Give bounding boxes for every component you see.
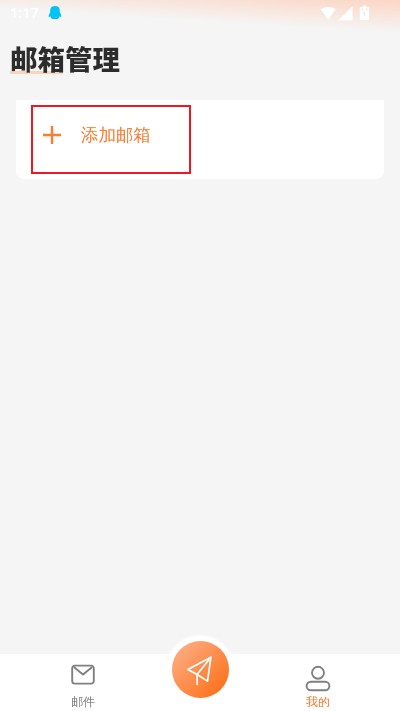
button[interactable]: 邮件 bbox=[47, 654, 119, 711]
staticText: 邮件 bbox=[71, 694, 95, 709]
button[interactable]: 添加邮箱 bbox=[31, 105, 191, 174]
staticText: 添加邮箱 bbox=[81, 124, 151, 146]
button[interactable]: 写邮件 bbox=[172, 641, 229, 698]
staticText: 我的 bbox=[306, 694, 330, 709]
staticText: 邮箱管理 bbox=[10, 38, 120, 78]
button[interactable]: 我的 bbox=[282, 654, 354, 711]
staticText: 1:17 bbox=[10, 2, 39, 22]
